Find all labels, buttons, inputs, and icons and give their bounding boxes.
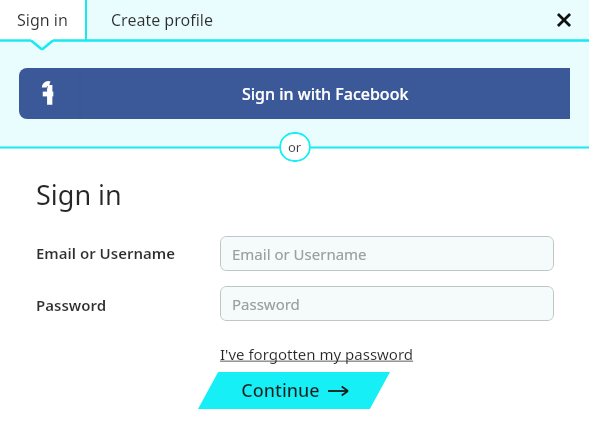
button[interactable]: Email or Username — [220, 236, 554, 271]
button[interactable]: Sign in — [0, 0, 85, 40]
button[interactable]: Continue — [198, 372, 390, 409]
staticText: Sign in — [17, 9, 68, 31]
button[interactable]: Password — [220, 286, 554, 321]
staticText: Password — [36, 295, 107, 315]
staticText: Email or Username — [36, 243, 176, 263]
staticText: Create profile — [111, 9, 213, 31]
staticText: Email or Username — [232, 244, 367, 264]
staticText: Sign in — [36, 176, 122, 213]
staticText: Continue — [241, 378, 320, 403]
staticText: or — [288, 138, 302, 156]
button[interactable]: Close — [539, 0, 589, 40]
staticText: Sign in with Facebook — [242, 83, 409, 105]
button[interactable]: Create profile — [87, 0, 539, 40]
button[interactable]: I've forgotten my password — [220, 342, 414, 366]
staticText: I've forgotten my password — [220, 344, 414, 364]
button[interactable]: Sign in with Facebook — [19, 68, 570, 119]
staticText: Password — [232, 294, 300, 314]
